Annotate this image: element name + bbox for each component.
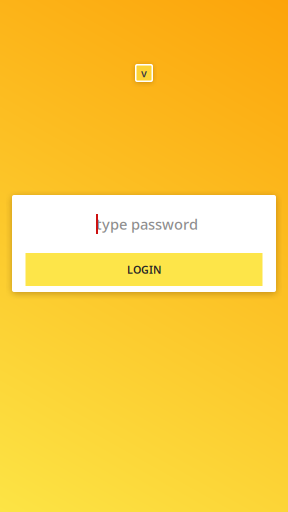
staticText: v — [141, 66, 147, 80]
staticText: type password — [96, 214, 198, 234]
staticText: LOGIN — [127, 262, 161, 277]
button[interactable]: type password — [12, 195, 276, 253]
button[interactable]: App logo — [135, 64, 153, 82]
button[interactable]: LOGIN — [25, 253, 262, 286]
